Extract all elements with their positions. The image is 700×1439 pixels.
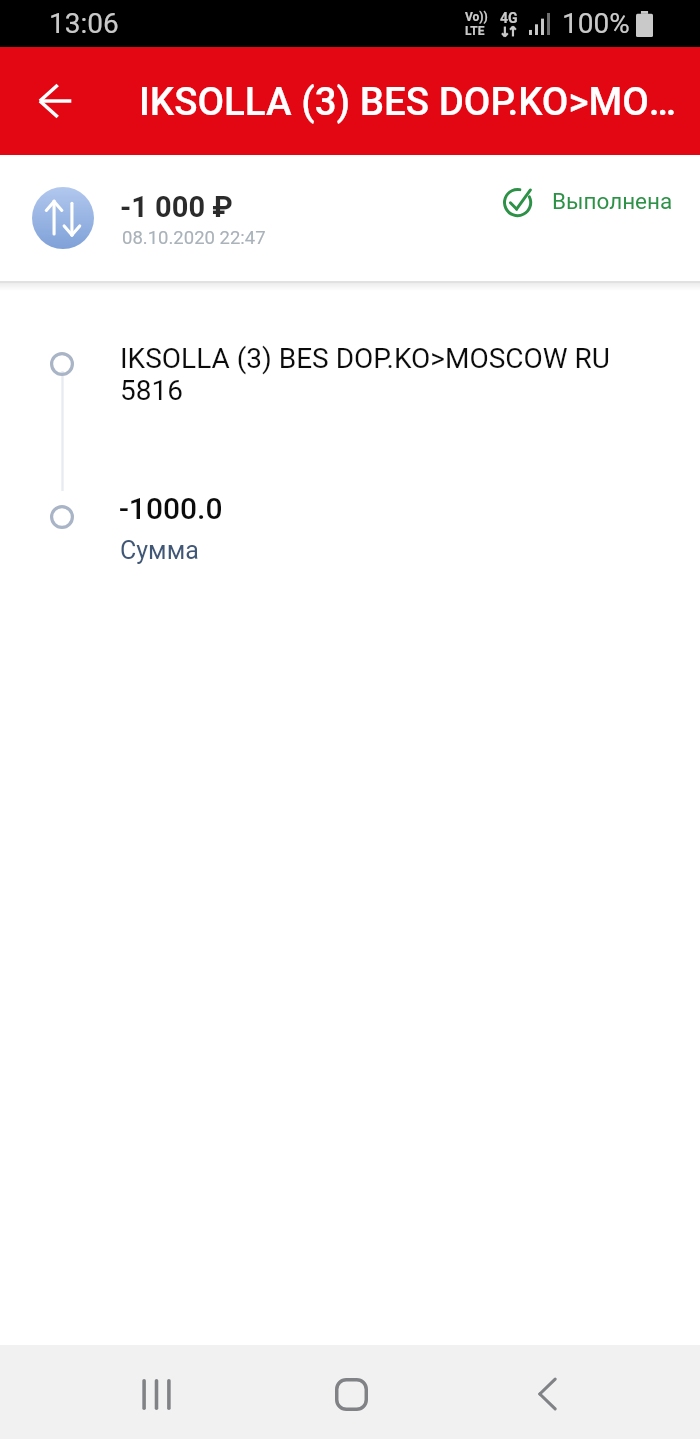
button[interactable]: Back [512,1359,582,1429]
staticText: 100% [562,7,630,40]
staticText: IKSOLLA (3) BES DOP.KO>MOSCOW RU 5816 [120,342,625,407]
button[interactable]: -1 000 ₽ [0,155,700,281]
staticText: Выполнена [552,188,673,214]
staticText: 08.10.2020 22:47 [122,227,266,249]
button[interactable]: IKSOLLA (3) BES DOP.KO>MOSCOW RU 5816 [40,341,660,461]
button[interactable]: Back [20,66,90,136]
staticText: Vo)) [465,10,488,24]
staticText: -1 000 ₽ [120,190,233,224]
button[interactable]: Recent apps [121,1359,191,1429]
staticText: IKSOLLA (3) BES DOP.KO>MOSCOW RU 5816 [139,79,686,124]
staticText: Сумма [120,536,199,565]
staticText: 4G [500,10,518,26]
button[interactable]: Home [316,1359,386,1429]
staticText: 13:06 [49,7,119,40]
staticText: -1000.0 [119,491,223,526]
staticText: LTE [465,24,485,38]
button[interactable]: -1000.0 [40,479,660,579]
